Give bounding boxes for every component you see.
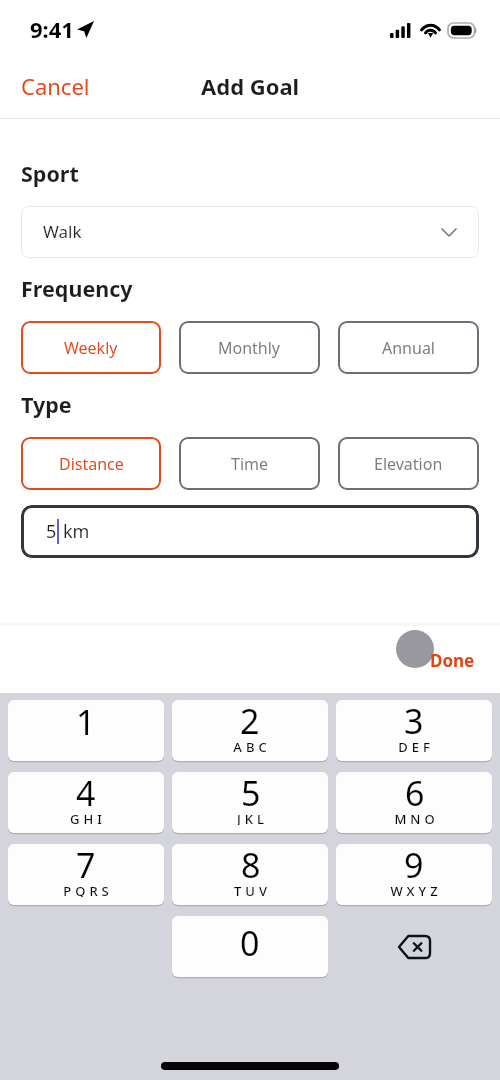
staticText: Time xyxy=(231,453,269,475)
staticText: 5 xyxy=(241,770,261,816)
button[interactable]: 5 xyxy=(21,505,479,558)
button[interactable]: 4 xyxy=(8,772,164,833)
button[interactable]: 5 xyxy=(172,772,328,833)
button[interactable]: Walk xyxy=(21,206,479,258)
staticText: Add Goal xyxy=(201,71,300,101)
staticText: PQRS xyxy=(63,882,113,897)
button[interactable]: Weekly xyxy=(21,321,161,374)
staticText: DEF xyxy=(398,738,434,753)
staticText: 4 xyxy=(76,770,96,816)
button[interactable]: 3 xyxy=(336,700,492,761)
staticText: 3 xyxy=(404,698,424,744)
staticText: Sport xyxy=(21,159,79,188)
staticText: JKL xyxy=(237,810,268,825)
button[interactable]: Annual xyxy=(338,321,479,374)
staticText: Elevation xyxy=(374,453,443,475)
staticText: Done xyxy=(430,649,475,672)
button[interactable]: Monthly xyxy=(179,321,320,374)
button[interactable]: Cancel xyxy=(0,61,104,111)
staticText: 9 xyxy=(404,842,424,888)
button[interactable]: 7 xyxy=(8,844,164,905)
button[interactable]: 2 xyxy=(172,700,328,761)
button[interactable]: 8 xyxy=(172,844,328,905)
staticText: Monthly xyxy=(218,337,281,359)
staticText: GHI xyxy=(70,810,106,825)
button[interactable]: Done xyxy=(416,638,500,681)
staticText: TUV xyxy=(234,882,271,897)
button[interactable]: Elevation xyxy=(338,437,479,490)
button[interactable]: 1 xyxy=(8,700,164,761)
staticText: km xyxy=(63,519,90,544)
staticText: Weekly xyxy=(64,337,118,359)
staticText: Frequency xyxy=(21,274,133,303)
staticText: 1 xyxy=(76,699,96,745)
staticText: Distance xyxy=(59,453,124,475)
button[interactable]: 9 xyxy=(336,844,492,905)
button[interactable]: Delete xyxy=(336,916,492,977)
staticText: WXYZ xyxy=(390,882,442,897)
button[interactable]: 6 xyxy=(336,772,492,833)
staticText: 6 xyxy=(405,770,425,816)
staticText: Cancel xyxy=(21,71,90,101)
staticText: 7 xyxy=(76,842,96,888)
staticText: Type xyxy=(21,390,72,419)
staticText: Walk xyxy=(43,220,82,243)
staticText: MNO xyxy=(394,810,439,825)
staticText: 5 xyxy=(46,519,57,544)
staticText: 0 xyxy=(240,920,260,966)
button[interactable]: Time xyxy=(179,437,320,490)
staticText: Annual xyxy=(382,337,435,359)
staticText: 9:41 xyxy=(30,14,74,44)
staticText: ABC xyxy=(233,738,271,753)
button[interactable]: 0 xyxy=(172,916,328,977)
staticText: 2 xyxy=(240,698,260,744)
staticText: 8 xyxy=(241,842,261,888)
button[interactable]: Distance xyxy=(21,437,161,490)
